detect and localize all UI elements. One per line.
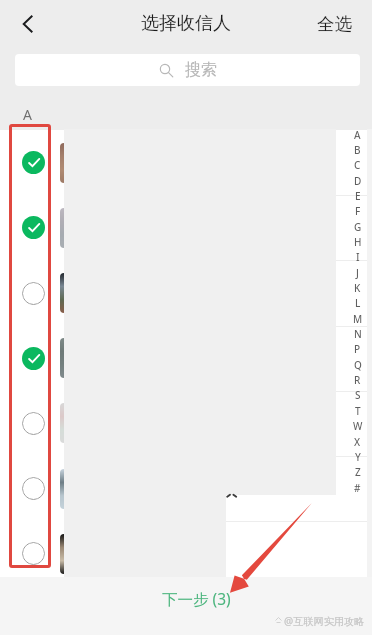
staticText: Q [354, 358, 362, 372]
staticText: L [355, 296, 361, 310]
staticText: Z [355, 465, 361, 479]
button[interactable]: I [350, 249, 365, 264]
button[interactable]: W [350, 418, 365, 433]
staticText: X [354, 435, 361, 449]
staticText: N [354, 327, 362, 341]
staticText: C [354, 158, 361, 172]
button[interactable] [0, 130, 372, 195]
button[interactable]: E [350, 188, 365, 203]
button[interactable]: K [350, 280, 365, 295]
button[interactable]: D [350, 173, 365, 188]
button[interactable] [0, 521, 372, 586]
button[interactable]: # [350, 480, 365, 495]
button[interactable] [0, 195, 372, 260]
staticText: W [353, 419, 363, 433]
button[interactable]: S [350, 387, 365, 402]
staticText: D [354, 174, 362, 188]
button[interactable] [0, 260, 372, 325]
button[interactable]: R [350, 372, 365, 387]
button[interactable]: J [350, 265, 365, 280]
staticText: R [354, 373, 361, 387]
button[interactable]: T [350, 403, 365, 418]
staticText: G [354, 220, 362, 234]
button[interactable]: L [350, 295, 365, 310]
button[interactable]: 下一步 (3) [160, 586, 233, 611]
button[interactable]: 搜索 [15, 54, 360, 86]
staticText: Y [355, 450, 361, 464]
button[interactable]: G [350, 219, 365, 234]
staticText: H [354, 235, 362, 249]
button[interactable]: A [350, 127, 365, 142]
staticText: 选择收信人 [141, 12, 231, 35]
staticText: @互联网实用攻略 [284, 614, 365, 628]
staticText: A [354, 128, 361, 142]
button[interactable]: H [350, 234, 365, 249]
button[interactable] [0, 391, 372, 456]
staticText: M [353, 312, 363, 326]
button[interactable]: B [350, 142, 365, 157]
staticText: J [356, 266, 359, 280]
button[interactable]: M [350, 311, 365, 326]
staticText: I [356, 250, 360, 264]
button[interactable]: Y [350, 449, 365, 464]
staticText: # [354, 481, 361, 495]
button[interactable] [0, 456, 372, 521]
staticText: 下一步 (3) [162, 588, 231, 609]
button[interactable]: Q [350, 357, 365, 372]
button[interactable]: F [350, 203, 365, 218]
button[interactable] [0, 326, 372, 391]
button[interactable]: X [350, 434, 365, 449]
button[interactable]: C [350, 157, 365, 172]
staticText: 全选 [317, 13, 352, 35]
staticText: P [354, 342, 361, 356]
button[interactable]: Back [8, 4, 48, 44]
staticText: T [355, 404, 361, 418]
button[interactable]: N [350, 326, 365, 341]
staticText: K [354, 281, 361, 295]
staticText: 搜索 [185, 60, 217, 80]
button[interactable]: Z [350, 464, 365, 479]
button[interactable]: 全选 [303, 6, 372, 42]
staticText: A [23, 105, 32, 124]
staticText: E [355, 189, 361, 203]
staticText: B [354, 143, 361, 157]
button[interactable]: P [350, 341, 365, 356]
staticText: S [355, 388, 361, 402]
staticText: F [355, 204, 361, 218]
